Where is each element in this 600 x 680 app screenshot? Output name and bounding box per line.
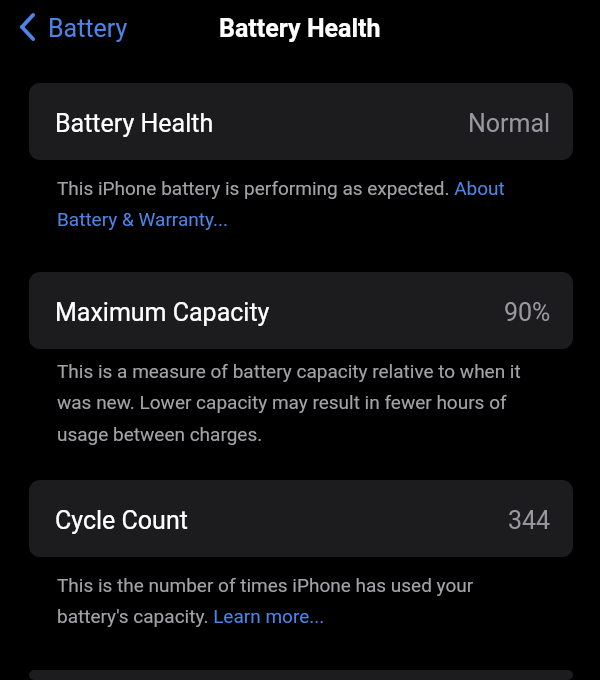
staticText: Battery Health <box>219 14 381 43</box>
button[interactable]: Back to Battery <box>16 8 132 49</box>
button[interactable]: Maximum Capacity <box>29 272 573 349</box>
staticText: This is the number of times iPhone has u… <box>57 574 542 628</box>
staticText: Battery Health <box>55 109 214 138</box>
staticText: This iPhone battery is performing as exp… <box>57 177 542 231</box>
staticText: 344 <box>508 506 551 535</box>
staticText: Cycle Count <box>55 506 188 535</box>
staticText: This is a measure of battery capacity re… <box>57 360 542 446</box>
button[interactable]: Cycle Count <box>29 480 573 557</box>
staticText: Battery <box>48 14 128 43</box>
staticText: Maximum Capacity <box>55 298 270 327</box>
staticText: Normal <box>468 109 551 138</box>
staticText: 90% <box>504 298 551 327</box>
button[interactable]: Battery Health <box>29 83 573 160</box>
